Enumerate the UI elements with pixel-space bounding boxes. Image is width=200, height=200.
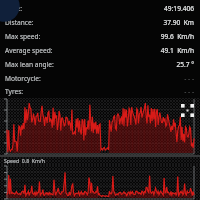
button[interactable]: Max speed: <box>5 29 194 43</box>
staticText: Tyres: <box>5 87 24 96</box>
staticText: - - - <box>184 74 194 83</box>
staticText: Motorcycle: <box>5 74 41 83</box>
staticText: Average speed: <box>5 46 53 55</box>
staticText: 37.90 Km <box>163 18 194 27</box>
button[interactable]: Average speed: <box>5 43 194 57</box>
button[interactable]: Max lean angle: <box>5 57 194 71</box>
staticText: 99.6 Km/h <box>160 32 194 41</box>
staticText: Distance: <box>5 18 34 27</box>
button[interactable]: Motorcycle: <box>5 71 194 85</box>
staticText: Speed 0.8 Km/h <box>4 157 45 164</box>
staticText: 49.1 Km/h <box>160 46 194 55</box>
staticText: - - - <box>184 87 194 96</box>
button[interactable] <box>0 165 200 200</box>
button[interactable]: Full screen <box>179 102 195 118</box>
button[interactable]: Full screen <box>0 98 200 155</box>
button[interactable]: Tyres: <box>5 85 194 98</box>
staticText: Max lean angle: <box>5 60 54 69</box>
button[interactable]: Distance: <box>5 15 194 29</box>
staticText: 49:19.406 <box>164 4 194 13</box>
staticText: 25.7 ° <box>176 60 194 69</box>
button[interactable]: Time: <box>5 1 194 15</box>
staticText: Max speed: <box>5 32 41 41</box>
staticText: Time: <box>5 4 23 13</box>
